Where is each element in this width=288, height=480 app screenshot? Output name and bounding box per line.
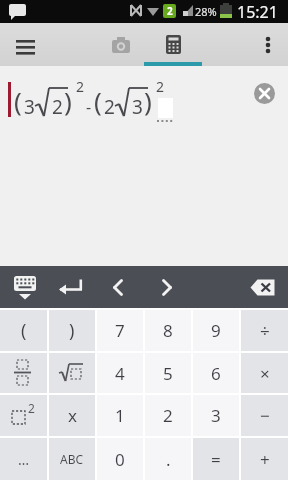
staticText: × — [260, 362, 270, 385]
button[interactable]: 9 — [193, 310, 239, 351]
staticText: ) — [144, 83, 152, 118]
button[interactable]: − — [241, 395, 288, 436]
staticText: 4 — [115, 362, 125, 385]
button[interactable] — [149, 23, 197, 66]
staticText: 2 — [163, 404, 173, 427]
staticText: 3 — [132, 94, 143, 120]
staticText: 28% — [195, 4, 217, 19]
button[interactable]: x — [49, 395, 95, 436]
staticText: … — [18, 450, 30, 469]
button[interactable] — [97, 23, 145, 66]
staticText: 2 — [156, 77, 165, 96]
staticText: 1 — [115, 404, 125, 427]
button[interactable] — [250, 27, 286, 63]
staticText: 2 — [167, 4, 173, 18]
button[interactable]: 2 — [0, 395, 47, 436]
staticText: . — [166, 448, 171, 471]
button[interactable] — [0, 353, 47, 393]
staticText: 3 — [24, 94, 35, 120]
button[interactable]: 3 — [193, 395, 239, 436]
button[interactable]: . — [145, 438, 191, 480]
button[interactable] — [55, 270, 89, 304]
button[interactable] — [8, 270, 42, 304]
staticText: x — [68, 404, 77, 427]
staticText: 5 — [163, 362, 173, 385]
staticText: 2 — [76, 77, 85, 96]
staticText: ( — [21, 318, 27, 343]
button[interactable]: 4 — [97, 353, 143, 393]
button[interactable]: × — [241, 353, 288, 393]
button[interactable]: 0 — [97, 438, 143, 480]
button[interactable] — [150, 270, 184, 304]
staticText: 2 — [104, 94, 115, 120]
staticText: ( — [14, 83, 22, 118]
button[interactable]: ( — [0, 310, 47, 351]
button[interactable] — [254, 83, 275, 104]
staticText: 0 — [115, 448, 125, 471]
staticText: 9 — [211, 319, 221, 342]
button[interactable] — [8, 27, 44, 63]
staticText: ( — [94, 83, 102, 118]
staticText: ) — [64, 83, 72, 118]
button[interactable]: ÷ — [241, 310, 288, 351]
button[interactable]: 8 — [145, 310, 191, 351]
staticText: = — [211, 448, 221, 471]
button[interactable]: 6 — [193, 353, 239, 393]
button[interactable] — [101, 270, 135, 304]
button[interactable]: + — [241, 438, 288, 480]
button[interactable] — [246, 270, 280, 304]
button[interactable]: = — [193, 438, 239, 480]
staticText: ) — [69, 318, 75, 343]
staticText: 7 — [115, 319, 125, 342]
staticText: ABC — [60, 451, 84, 467]
staticText: 2 — [52, 94, 63, 120]
staticText: 8 — [163, 319, 173, 342]
button[interactable] — [49, 353, 95, 393]
button[interactable]: ABC — [49, 438, 95, 480]
button[interactable]: 5 — [145, 353, 191, 393]
button[interactable]: … — [0, 438, 47, 480]
staticText: 15:21 — [237, 1, 278, 23]
staticText: 6 — [211, 362, 221, 385]
staticText: ÷ — [260, 319, 270, 342]
staticText: - — [86, 96, 92, 118]
button[interactable]: ) — [49, 310, 95, 351]
staticText: 3 — [211, 404, 221, 427]
button[interactable]: 2 — [145, 395, 191, 436]
button[interactable]: 1 — [97, 395, 143, 436]
button[interactable]: 7 — [97, 310, 143, 351]
staticText: + — [260, 448, 270, 471]
staticText: − — [260, 404, 270, 427]
staticText: 2 — [28, 400, 35, 416]
